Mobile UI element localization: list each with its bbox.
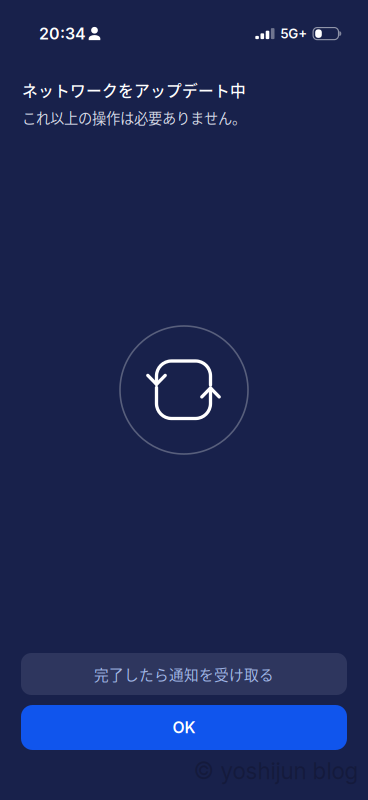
staticText: 20:34 (39, 24, 86, 43)
staticText: ネットワークをアップデート中 (22, 78, 246, 101)
staticText: OK (172, 718, 195, 737)
staticText: © yoshijun blog (193, 757, 358, 785)
button[interactable]: 完了したら通知を受け取る (21, 653, 347, 695)
button[interactable]: OK (21, 705, 347, 750)
staticText: 完了したら通知を受け取る (94, 663, 274, 685)
staticText: 5G+ (280, 25, 307, 42)
staticText: これ以上の操作は必要ありません。 (22, 107, 246, 128)
